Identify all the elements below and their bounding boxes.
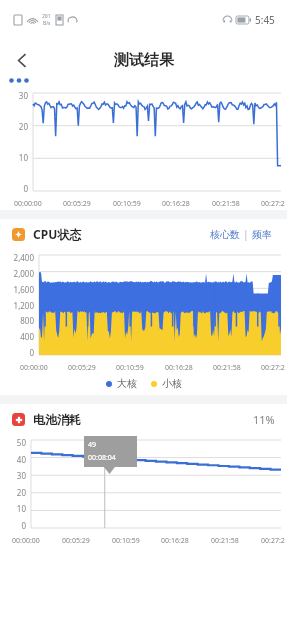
staticText: 20 [18, 121, 28, 132]
staticText: 00:21:58 [212, 199, 240, 209]
staticText: 00:16:28 [162, 199, 190, 209]
staticText: 2,000 [13, 268, 34, 279]
staticText: 2,400 [13, 252, 34, 263]
staticText: CPU状态 [33, 226, 82, 242]
staticText: 0 [29, 347, 34, 358]
button[interactable]: 核心数 [207, 224, 243, 245]
staticText: 30 [16, 470, 26, 481]
staticText: 00:16:28 [165, 363, 193, 373]
staticText: 00:05:29 [68, 363, 96, 373]
staticText: 频率 [252, 228, 272, 241]
staticText: 00:10:59 [116, 363, 144, 373]
staticText: 1,200 [13, 300, 34, 311]
staticText: 00:27:2 [261, 199, 285, 209]
staticText: 核心数 [210, 228, 240, 241]
staticText: 00:21:58 [211, 536, 239, 546]
staticText: 10 [18, 152, 28, 163]
staticText: 00:10:59 [113, 199, 141, 209]
staticText: 1,600 [13, 284, 34, 295]
staticText: 大核 [117, 377, 137, 390]
staticText: 800 [20, 315, 34, 326]
staticText: 0 [21, 520, 26, 531]
staticText: 00:05:29 [63, 199, 91, 209]
staticText: | [243, 227, 249, 241]
staticText: B/s [43, 20, 51, 27]
staticText: 00:00:00 [20, 363, 48, 373]
staticText: 测试结果 [114, 51, 174, 70]
staticText: 30 [18, 90, 28, 101]
staticText: 49 [88, 440, 97, 450]
staticText: 10 [16, 503, 26, 514]
staticText: 40 [16, 454, 26, 465]
button[interactable]: Back [4, 42, 40, 78]
staticText: 20 [16, 487, 26, 498]
staticText: 0 [23, 183, 28, 194]
staticText: 00:27:2 [261, 536, 285, 546]
staticText: 11% [253, 412, 275, 427]
staticText: 00:27:2 [261, 363, 285, 373]
staticText: 00:16:28 [161, 536, 189, 546]
staticText: 201 [42, 13, 51, 20]
staticText: 00:00:00 [12, 536, 40, 546]
staticText: 400 [20, 331, 34, 342]
staticText: 小核 [162, 377, 182, 390]
staticText: 00:10:59 [112, 536, 140, 546]
staticText: 5:45 [255, 13, 275, 27]
staticText: 00:08:04 [88, 453, 116, 463]
staticText: 00:21:58 [213, 363, 241, 373]
staticText: 50 [16, 437, 26, 448]
staticText: 00:05:29 [62, 536, 90, 546]
staticText: 电池消耗 [33, 412, 81, 427]
button[interactable]: 频率 [249, 224, 275, 245]
staticText: 00:00:00 [14, 199, 42, 209]
